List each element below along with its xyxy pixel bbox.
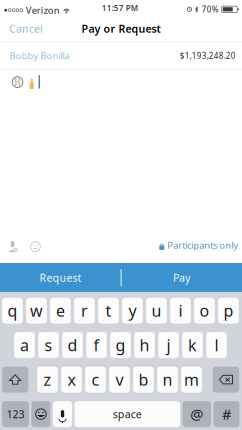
button[interactable]: i	[170, 298, 191, 324]
button[interactable]: Shift	[2, 367, 28, 393]
staticText: Pay	[173, 270, 190, 285]
staticText: l	[214, 334, 218, 356]
button[interactable]: o	[194, 298, 215, 324]
staticText: z	[43, 369, 51, 390]
staticText: b	[138, 369, 148, 390]
button[interactable]: Cancel	[0, 16, 52, 41]
button[interactable]: Participants only	[155, 235, 242, 255]
button[interactable]: d	[62, 332, 83, 358]
staticText: 123	[6, 407, 24, 421]
staticText: a	[20, 334, 29, 356]
staticText: i	[178, 300, 182, 321]
button[interactable]: Emoji	[25, 237, 45, 257]
staticText: 70%	[202, 4, 219, 15]
staticText: Request	[39, 270, 81, 285]
button[interactable]: w	[26, 298, 47, 324]
button[interactable]: n	[157, 367, 178, 393]
button[interactable]: c	[85, 367, 106, 393]
button[interactable]: z	[37, 367, 58, 393]
staticText: Pay or Request	[81, 22, 160, 36]
button[interactable]: Add participants	[1, 234, 21, 255]
button[interactable]: m	[181, 367, 202, 393]
button[interactable]: t	[98, 298, 119, 324]
button[interactable]: p	[218, 298, 239, 324]
staticText: $1,193,248.20	[180, 50, 236, 61]
staticText: g	[115, 334, 125, 356]
staticText: p	[223, 300, 233, 321]
button[interactable]: b	[133, 367, 154, 393]
button[interactable]: j	[158, 332, 179, 358]
staticText: Cancel	[9, 22, 43, 36]
button[interactable]: #	[213, 401, 239, 427]
staticText: space	[113, 407, 142, 421]
button[interactable]: l	[206, 332, 227, 358]
staticText: Participants only	[167, 239, 238, 251]
staticText: h	[139, 334, 149, 356]
button[interactable]: @	[182, 401, 211, 427]
button[interactable]: g	[110, 332, 131, 358]
staticText: y	[128, 300, 136, 321]
button[interactable]: v	[109, 367, 130, 393]
staticText: Bobby Bonilla	[9, 49, 69, 62]
staticText: #	[222, 404, 231, 424]
button[interactable]: Delete	[213, 367, 239, 393]
staticText: m	[184, 369, 199, 390]
staticText: 11:57 PM	[102, 3, 138, 13]
button[interactable]: k	[182, 332, 203, 358]
button[interactable]: s	[38, 332, 59, 358]
staticText: u	[151, 300, 161, 321]
button[interactable]: h	[134, 332, 155, 358]
staticText: f	[93, 334, 99, 356]
staticText: e	[56, 300, 65, 321]
staticText: r	[81, 300, 88, 321]
button[interactable]: a	[14, 332, 35, 358]
staticText: c	[91, 369, 99, 390]
button[interactable]: Emoji keyboard	[31, 401, 50, 427]
staticText: n	[162, 369, 172, 390]
button[interactable]: e	[50, 298, 71, 324]
staticText: k	[188, 334, 197, 356]
button[interactable]: space	[74, 401, 180, 427]
staticText: v	[115, 369, 123, 390]
button[interactable]: q	[2, 298, 23, 324]
staticText: j	[166, 334, 170, 356]
button[interactable]: u	[146, 298, 167, 324]
button[interactable]: Pay	[121, 263, 242, 292]
staticText: s	[44, 334, 52, 356]
button[interactable]: f	[86, 332, 107, 358]
button[interactable]: r	[74, 298, 95, 324]
staticText: d	[67, 334, 77, 356]
staticText: w	[30, 300, 43, 321]
staticText: o	[199, 300, 209, 321]
staticText: x	[67, 369, 75, 390]
staticText: q	[7, 300, 17, 321]
staticText: t	[105, 300, 111, 321]
staticText: @	[190, 404, 203, 424]
button[interactable]: Request	[0, 263, 121, 292]
button[interactable]: 123	[2, 401, 29, 427]
staticText: Verizon	[26, 4, 60, 16]
button[interactable]: y	[122, 298, 143, 324]
button[interactable]: x	[61, 367, 82, 393]
button[interactable]: Dictate	[53, 401, 72, 427]
